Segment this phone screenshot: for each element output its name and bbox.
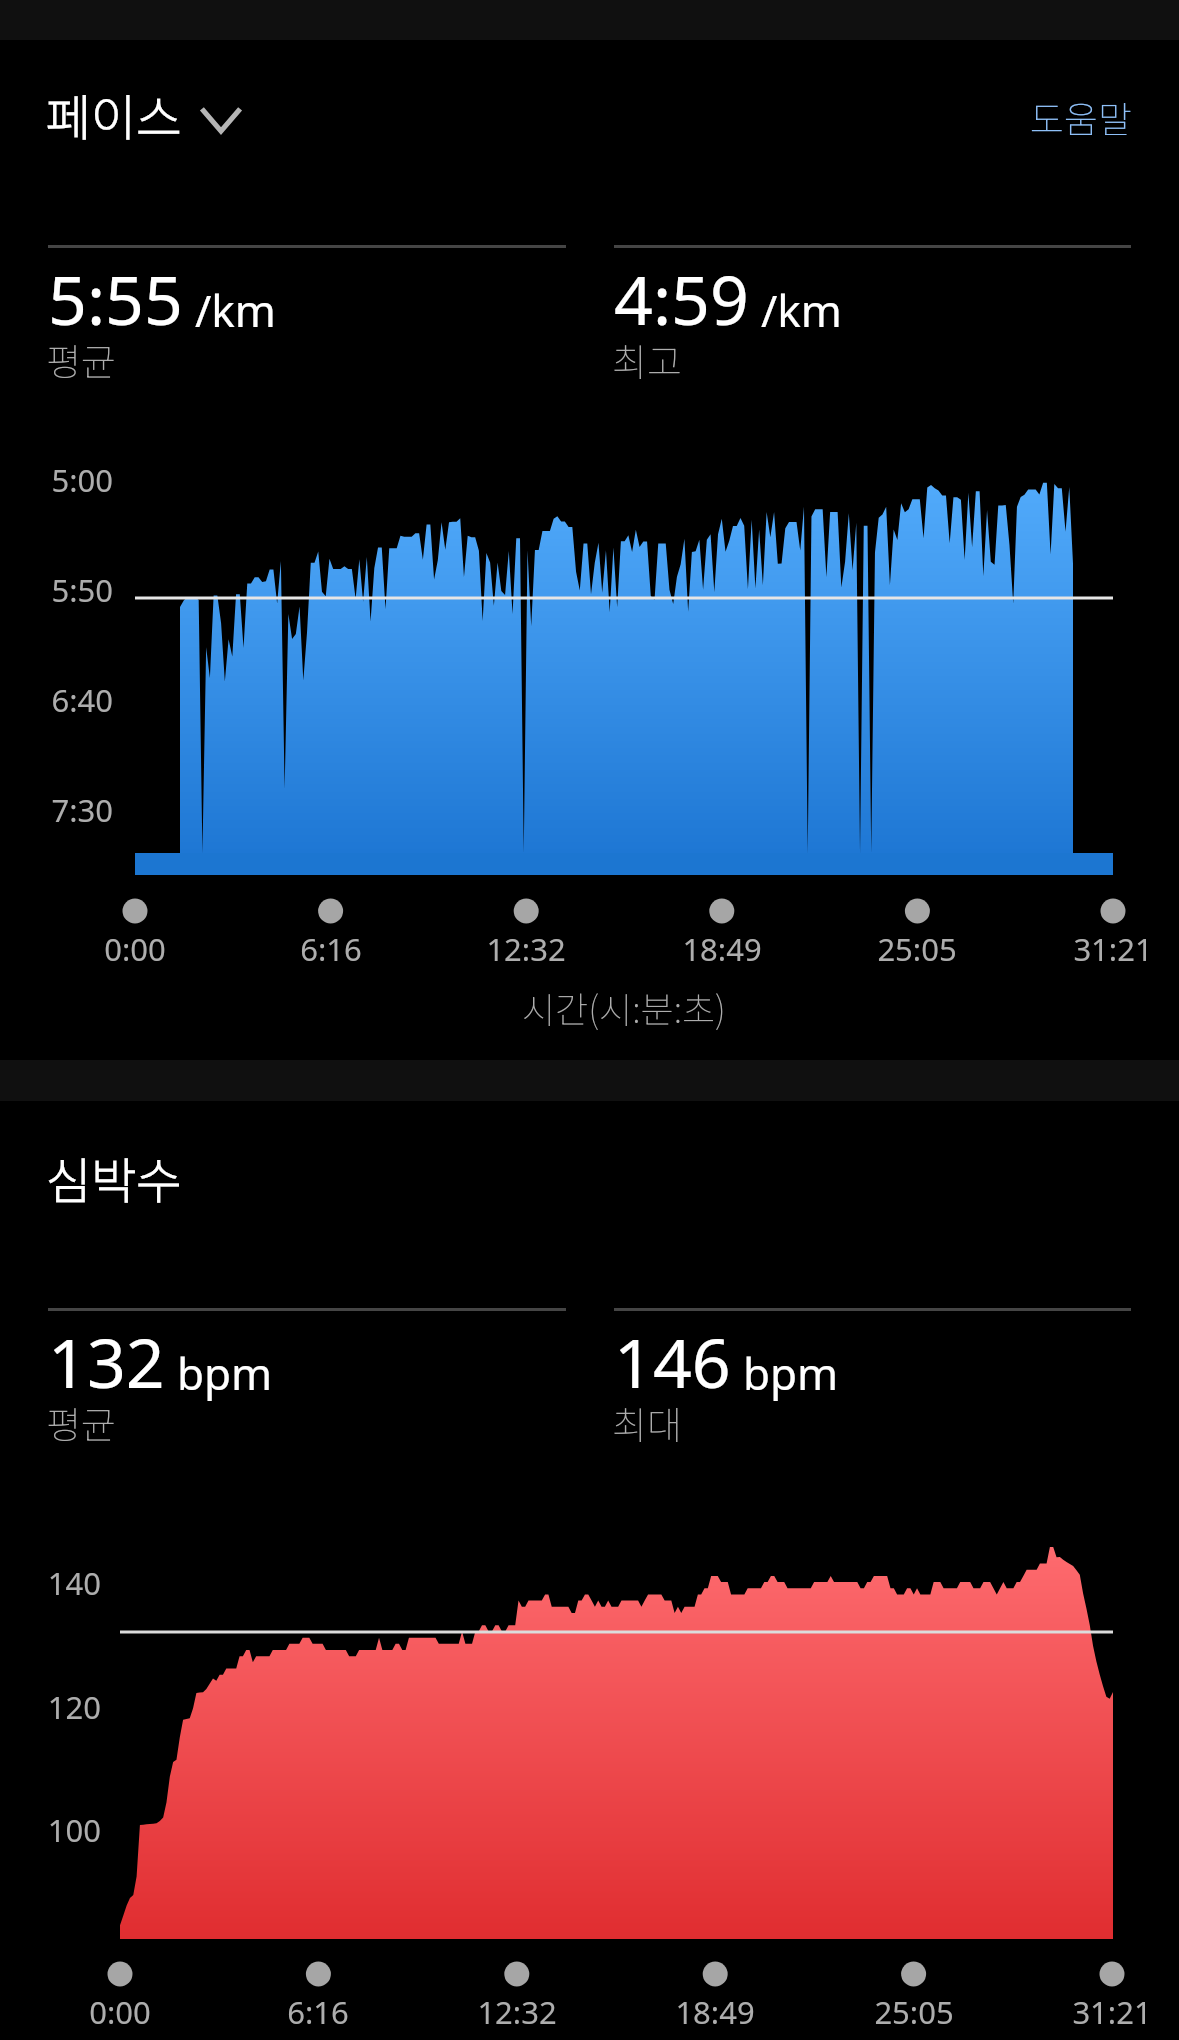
staticText: 146 (614, 1315, 731, 1408)
staticText: 5:50 (0, 569, 113, 611)
staticText: 최고 (612, 332, 682, 387)
staticText: 평균 (46, 1395, 116, 1450)
staticText: 25:05 (814, 1991, 1014, 2033)
button[interactable]: 심박수 (46, 1142, 182, 1213)
staticText: 100 (0, 1809, 101, 1851)
staticText: 시간(시:분:초) (324, 981, 924, 1033)
staticText: 31:21 (1013, 928, 1179, 970)
staticText: 평균 (46, 332, 116, 387)
staticText: 0:00 (20, 1991, 220, 2033)
staticText: 6:40 (0, 679, 113, 721)
staticText: /km (195, 280, 277, 340)
staticText: 12:32 (417, 1991, 617, 2033)
staticText: 5:55 (48, 252, 183, 345)
staticText: 6:16 (218, 1991, 418, 2033)
staticText: 도움말 (1030, 90, 1133, 144)
staticText: 4:59 (614, 252, 749, 345)
staticText: 18:49 (622, 928, 822, 970)
staticText: bpm (177, 1343, 273, 1403)
staticText: 18:49 (615, 1991, 815, 2033)
staticText: /km (761, 280, 843, 340)
button[interactable]: 페이스 (46, 79, 242, 150)
staticText: 140 (0, 1562, 101, 1604)
staticText: 12:32 (426, 928, 626, 970)
staticText: 120 (0, 1686, 101, 1728)
button[interactable]: 도움말 (940, 86, 1133, 148)
staticText: 6:16 (231, 928, 431, 970)
staticText: 페이스 (46, 79, 182, 150)
staticText: 0:00 (35, 928, 235, 970)
staticText: 7:30 (0, 789, 113, 831)
staticText: 최대 (612, 1395, 682, 1450)
staticText: 31:21 (1012, 1991, 1179, 2033)
staticText: 5:00 (0, 459, 113, 501)
staticText: 132 (48, 1315, 165, 1408)
staticText: 심박수 (46, 1142, 182, 1213)
staticText: bpm (743, 1343, 839, 1403)
staticText: 25:05 (817, 928, 1017, 970)
